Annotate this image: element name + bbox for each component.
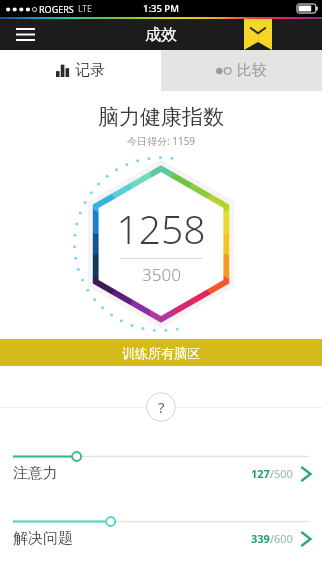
staticText: 今日得分: 1159 xyxy=(0,134,322,148)
button[interactable]: 比较 xyxy=(161,50,322,91)
button[interactable]: Expand xyxy=(244,19,272,50)
button[interactable]: Help xyxy=(146,392,176,422)
staticText: 解决问题 xyxy=(13,529,73,548)
staticText: 1258 xyxy=(116,202,206,255)
staticText: LTE xyxy=(78,3,92,15)
staticText: 脑力健康指数 xyxy=(0,104,322,130)
staticText: 339/600 xyxy=(251,531,293,546)
staticText: 1:35 PM xyxy=(143,2,179,15)
staticText: ROGERS xyxy=(39,3,74,15)
staticText: 比较 xyxy=(237,61,267,80)
staticText: 记录 xyxy=(75,61,105,80)
button[interactable]: 注意力 xyxy=(0,451,322,483)
staticText: 3500 xyxy=(142,263,181,286)
staticText: 训练所有脑区 xyxy=(122,345,200,361)
staticText: 注意力 xyxy=(13,464,58,483)
staticText: 成效 xyxy=(145,25,177,45)
button[interactable]: Menu xyxy=(8,19,42,50)
button[interactable]: 记录 xyxy=(0,50,161,91)
button[interactable]: 训练所有脑区 xyxy=(0,339,322,366)
staticText: ? xyxy=(158,397,165,417)
staticText: 127/500 xyxy=(251,466,293,481)
button[interactable]: 解决问题 xyxy=(0,516,322,548)
